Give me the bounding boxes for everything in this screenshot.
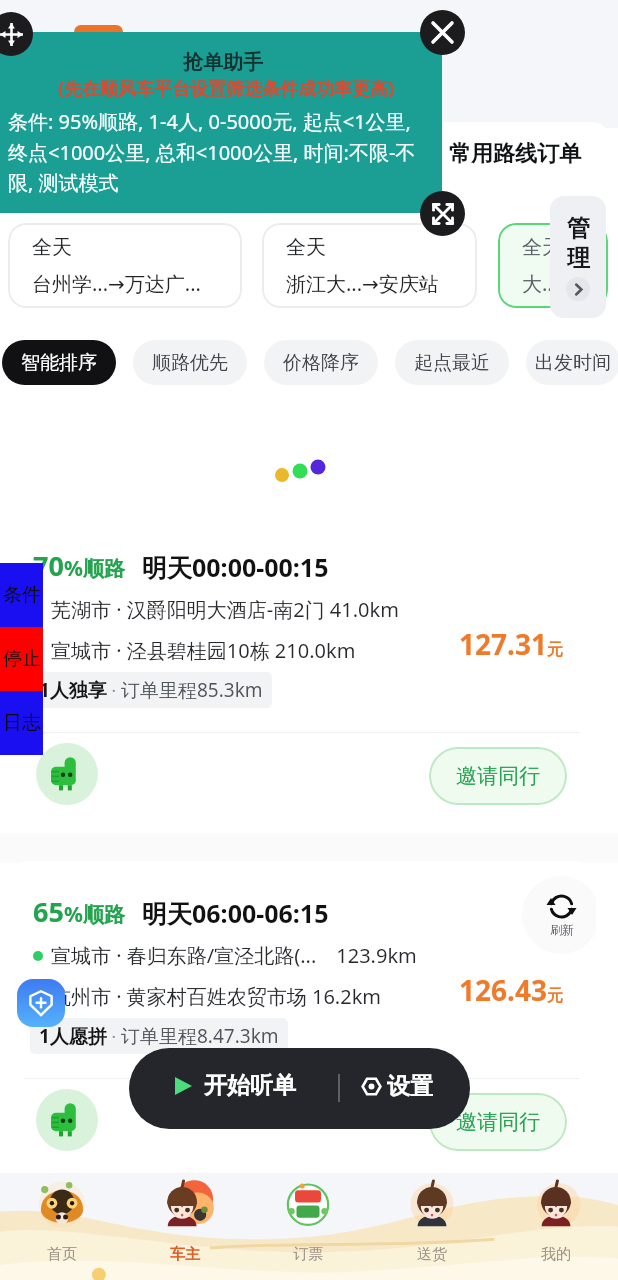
staticText: 全天 [286,235,326,260]
staticText: 1人独享 [39,677,107,703]
button[interactable]: 全天 [498,223,608,308]
staticText: 顺路优先 [152,351,228,375]
staticText: 127.31 [459,625,547,663]
button[interactable]: 开始听单 [175,1071,296,1100]
staticText: 管 [567,214,590,243]
button[interactable]: 65 [8,861,596,1179]
button[interactable]: 管 [550,196,606,318]
staticText: 元 [547,640,563,660]
button[interactable]: 安全中心 [17,979,65,1027]
staticText: 价格降序 [283,351,359,375]
staticText: · [107,679,121,702]
staticText: 126.43 [459,971,547,1009]
button[interactable]: 日志 [0,691,43,755]
staticText: 车主服务 [26,40,114,68]
staticText: 条件 [3,583,41,607]
staticText: 全天 [522,235,562,260]
staticText: 起点最近 [414,351,490,375]
button[interactable]: 送货 [370,1173,494,1280]
staticText: 我的 [541,1245,571,1264]
button[interactable]: 邀请同行 [429,1093,567,1151]
staticText: 设置 [387,1072,433,1101]
button[interactable]: 刷新 [522,876,596,954]
staticText: 顺风车 [136,36,208,66]
button[interactable]: 起点最近 [395,340,509,385]
button[interactable]: 订票 [246,1173,370,1280]
button[interactable]: 出发时间 [526,340,618,385]
staticText: 70 [33,547,64,584]
staticText: 日志 [3,711,41,735]
staticText: 大... [522,270,559,297]
staticText: 条件: 95%顺路, 1-4人, 0-5000元, 起点<1公里, 终点<100… [8,108,426,196]
button[interactable]: 关闭 [420,10,465,55]
staticText: 台州学...→万达广... [32,270,201,297]
staticText: 芜湖市 · 汉爵阳明大酒店-南2门 41.0km [51,596,399,623]
button[interactable]: 顺路优先 [133,340,247,385]
staticText: (先在顺风车平台设置筛选条件成功率更高) [58,76,395,101]
staticText: 开始听单 [204,1071,296,1100]
staticText: 全天 [32,235,72,260]
button[interactable]: 首页 [0,1173,123,1280]
staticText: 首页 [47,1245,77,1264]
staticText: 刷新 [550,922,574,937]
button[interactable]: 条件 [0,563,43,627]
button[interactable]: 车主 [123,1173,246,1280]
staticText: 邀请同行 [456,1109,540,1135]
staticText: 明天06:00-06:15 [142,896,329,930]
button[interactable]: 全天 [262,223,477,308]
staticText: 送货 [417,1245,447,1264]
staticText: 65 [33,893,64,930]
staticText: 订票 [293,1245,323,1264]
button[interactable]: 邀请同行 [429,747,567,805]
button[interactable]: 全屏 [420,191,465,236]
staticText: 元 [547,986,563,1006]
staticText: 出发时间 [535,351,611,375]
staticText: · [107,1025,121,1048]
staticText: 浙江大...→安庆站 [286,270,439,297]
staticText: 1人愿拼 [39,1023,107,1049]
staticText: 邀请同行 [456,763,540,789]
staticText: 抢单助手 [183,50,263,75]
staticText: 理 [567,244,590,273]
button[interactable]: 我的 [494,1173,618,1280]
staticText: 宣城市 · 泾县碧桂园10栋 210.0km [51,637,356,664]
staticText: 智能排序 [21,351,97,375]
staticText: %顺路 [64,900,125,929]
staticText: 常用路线订单 [449,140,581,168]
staticText: 停止 [3,647,41,671]
button[interactable]: 全天 [8,223,242,308]
staticText: 宣城市 · 春归东路/宣泾北路(... 123.9km [51,942,417,969]
staticText: 订单里程85.3km [121,677,263,703]
staticText: 杭州市 · 黄家村百姓农贸市场 16.2km [51,983,382,1010]
button[interactable]: 价格降序 [264,340,378,385]
button[interactable]: 停止 [0,627,43,691]
button[interactable]: 70 [8,515,596,833]
button[interactable]: 智能排序 [2,340,116,385]
button[interactable]: 移动 [0,12,33,56]
staticText: 订单里程8.47.3km [121,1023,279,1049]
staticText: 车主 [170,1245,200,1264]
staticText: %顺路 [64,554,125,583]
button[interactable]: 设置 [361,1072,433,1101]
staticText: 明天00:00-00:15 [142,550,329,584]
